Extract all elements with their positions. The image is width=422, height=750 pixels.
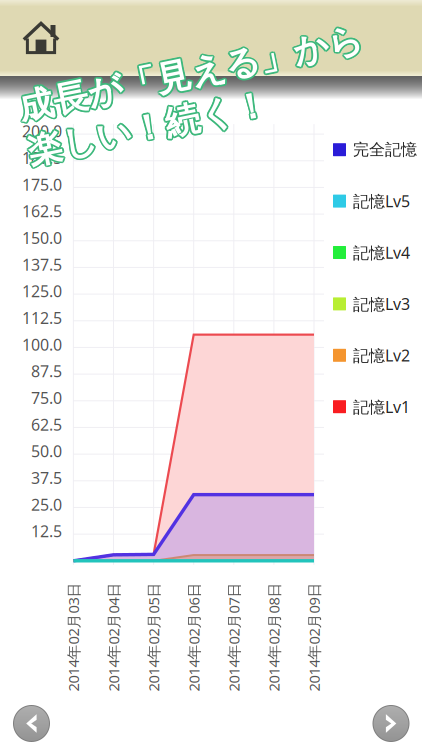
staticText: 成長が「見える」から: [22, 52, 372, 95]
staticText: 成長が「見える」から: [18, 52, 368, 95]
staticText: 成長が「見える」から: [21, 53, 371, 96]
staticText: 2014年02月03日: [19, 627, 128, 647]
staticText: 成長が「見える」から: [20, 52, 370, 95]
staticText: 楽しい！続く！: [19, 98, 264, 140]
staticText: 187.5: [22, 147, 62, 168]
staticText: 162.5: [22, 200, 62, 222]
staticText: 100.0: [22, 334, 62, 355]
staticText: 2014年02月08日: [219, 627, 328, 647]
staticText: 記憶Lv3: [353, 293, 410, 314]
staticText: 200.0: [22, 120, 62, 142]
staticText: 2014年02月04日: [59, 627, 168, 647]
staticText: 記憶Lv5: [353, 190, 410, 212]
staticText: 25.0: [31, 494, 62, 515]
staticText: 楽しい！続く！: [18, 97, 263, 139]
staticText: 50.0: [31, 440, 62, 462]
staticText: 記憶Lv4: [353, 242, 410, 263]
staticText: 62.5: [31, 414, 62, 435]
staticText: 完全記憶: [353, 140, 417, 160]
staticText: 楽しい！続く！: [20, 97, 265, 139]
staticText: 楽しい！続く！: [20, 95, 265, 137]
staticText: 2014年02月09日: [259, 627, 368, 647]
staticText: 75.0: [31, 387, 62, 408]
staticText: 楽しい！続く！: [21, 95, 266, 138]
staticText: 150.0: [22, 227, 62, 248]
staticText: 137.5: [22, 254, 62, 275]
button[interactable]: Next page: [365, 697, 417, 749]
staticText: 112.5: [22, 307, 62, 328]
staticText: 125.0: [22, 280, 62, 302]
staticText: 成長が「見える」から: [21, 51, 371, 93]
staticText: 2014年02月07日: [179, 627, 288, 647]
staticText: 成長が「見える」から: [20, 50, 370, 93]
staticText: 37.5: [31, 467, 62, 488]
staticText: 成長が「見える」から: [20, 54, 370, 96]
staticText: 175.0: [22, 174, 62, 195]
staticText: 87.5: [31, 360, 62, 382]
button[interactable]: Previous page: [5, 697, 57, 749]
staticText: 成長が「見える」から: [19, 51, 369, 93]
staticText: 記憶Lv2: [353, 345, 410, 366]
staticText: 記憶Lv1: [353, 396, 410, 417]
staticText: 12.5: [31, 520, 62, 542]
staticText: 楽しい！続く！: [19, 95, 264, 138]
staticText: 2014年02月05日: [99, 627, 208, 647]
staticText: 楽しい！続く！: [21, 98, 266, 140]
staticText: 2014年02月06日: [139, 627, 248, 647]
button[interactable]: Home: [2, 1, 80, 75]
staticText: 楽しい！続く！: [20, 98, 265, 141]
staticText: 楽しい！続く！: [22, 97, 267, 139]
staticText: 成長が「見える」から: [19, 53, 369, 96]
